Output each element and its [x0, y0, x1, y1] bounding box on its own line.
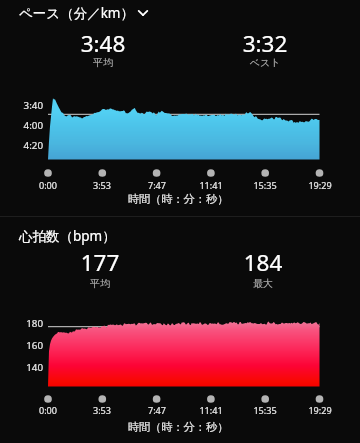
staticText: 11:41 [186, 179, 236, 191]
button[interactable]: ペース（分／km） [0, 0, 360, 27]
staticText: 180 [3, 317, 43, 330]
staticText: 19:29 [295, 404, 345, 416]
staticText: 3:53 [77, 179, 127, 191]
button[interactable]: 3:32 [205, 28, 325, 68]
staticText: 時間（時：分：秒） [80, 420, 276, 434]
staticText: 0:00 [23, 179, 73, 191]
staticText: 最大 [203, 277, 323, 290]
button[interactable]: 3:48 [43, 28, 163, 68]
staticText: ベスト [205, 56, 325, 69]
staticText: 19:29 [295, 179, 345, 191]
staticText: 11:41 [186, 404, 236, 416]
staticText: 15:35 [240, 179, 290, 191]
button[interactable]: 心拍数（bpm） [0, 224, 360, 249]
staticText: 7:47 [132, 179, 182, 191]
staticText: 140 [3, 361, 43, 374]
staticText: 184 [203, 247, 323, 278]
staticText: ペース（分／km） [19, 4, 134, 22]
staticText: 平均 [40, 277, 160, 290]
staticText: 3:48 [43, 28, 163, 59]
staticText: 4:00 [3, 119, 43, 132]
staticText: 時間（時：分：秒） [80, 192, 276, 206]
other: メトリックを選択 [136, 6, 150, 20]
staticText: 160 [3, 339, 43, 352]
staticText: 7:47 [132, 404, 182, 416]
staticText: 177 [40, 247, 160, 278]
staticText: 心拍数（bpm） [19, 227, 116, 245]
staticText: 0:00 [23, 404, 73, 416]
staticText: 3:53 [77, 404, 127, 416]
staticText: 3:40 [3, 99, 43, 112]
staticText: 15:35 [240, 404, 290, 416]
button[interactable]: 184 [203, 247, 323, 287]
staticText: 3:32 [205, 28, 325, 59]
staticText: 4:20 [3, 139, 43, 152]
staticText: 平均 [43, 56, 163, 69]
button[interactable]: 177 [40, 247, 160, 287]
